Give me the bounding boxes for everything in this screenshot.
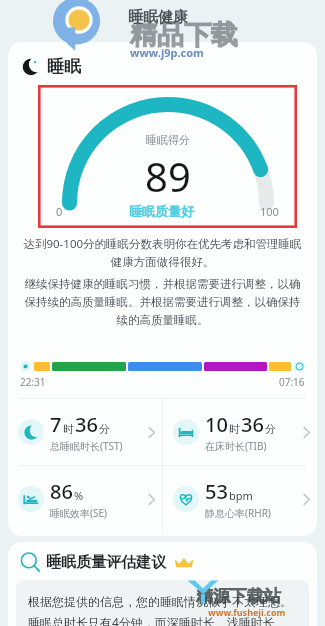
staticText: 睡眠得分 [146, 133, 190, 147]
button[interactable]: 86 [8, 466, 162, 532]
staticText: 07:16 [279, 375, 305, 389]
staticText: 7 [50, 411, 62, 438]
staticText: 睡眠健康 [128, 8, 188, 27]
staticText: 86 [50, 478, 73, 505]
staticText: 分 [265, 422, 276, 436]
button[interactable]: 10 [163, 399, 317, 465]
staticText: 时 [229, 422, 240, 436]
button[interactable]: 睡眠质量评估建议 [20, 552, 194, 572]
staticText: 睡眠效率(SE) [50, 506, 108, 520]
staticText: bpm [229, 488, 253, 503]
staticText: 时 [63, 422, 74, 436]
staticText: www.fusheji.com [208, 606, 286, 618]
staticText: 精品下载 [130, 18, 238, 52]
staticText: 继续保持健康的睡眠习惯，并根据需要进行调整，以确保持续的高质量睡眠。并根据需要进… [22, 277, 303, 328]
staticText: 36 [75, 411, 98, 438]
staticText: 睡眠质量评估建议 [46, 553, 166, 572]
staticText: % [74, 488, 84, 503]
button[interactable]: 睡眠得分 [38, 85, 297, 228]
staticText: 89 [145, 149, 191, 203]
staticText: 总睡眠时长(TST) [50, 439, 123, 453]
staticText: 分 [99, 422, 110, 436]
button[interactable]: 睡眠 [22, 56, 81, 77]
staticText: 根据您提供的信息，您的睡眠情况似乎不太理想。 睡眠总时长只有4分钟，而深睡时长、… [28, 594, 297, 626]
staticText: 睡眠质量好 [63, 203, 260, 219]
staticText: 10 [205, 411, 228, 438]
staticText: 静息心率(RHR) [205, 506, 271, 520]
staticText: 36 [241, 411, 264, 438]
staticText: 达到90-100分的睡眠分数表明你在优先考虑和管理睡眠健康方面做得很好。 [22, 236, 303, 270]
staticText: www.j9p.com [130, 45, 204, 60]
staticText: 22:31 [20, 375, 46, 389]
staticText: 53 [205, 478, 228, 505]
staticText: 在床时长(TIB) [205, 439, 267, 453]
button[interactable]: 7 [8, 399, 162, 465]
staticText: 精源下载站 [196, 586, 281, 607]
button[interactable]: 53 [163, 466, 317, 532]
staticText: 100 [260, 204, 279, 219]
staticText: 睡眠 [47, 56, 81, 77]
staticText: 0 [56, 204, 63, 219]
